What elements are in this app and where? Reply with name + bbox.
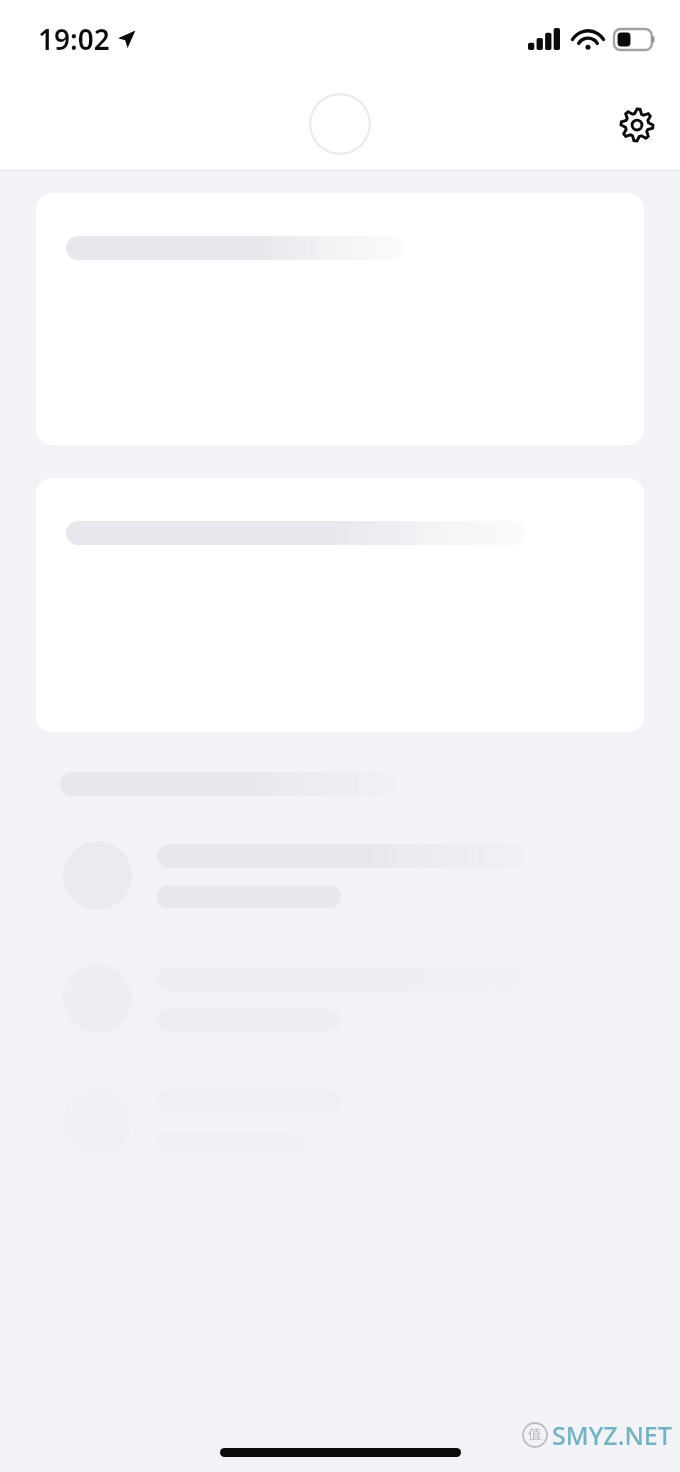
button[interactable] [36,478,644,732]
staticText: SMYZ.NET [552,1418,672,1452]
staticText: 值 [528,1426,542,1444]
button[interactable] [0,814,680,937]
button[interactable]: Settings [613,101,661,149]
button[interactable] [36,193,644,445]
staticText: 19:02 [38,20,110,58]
